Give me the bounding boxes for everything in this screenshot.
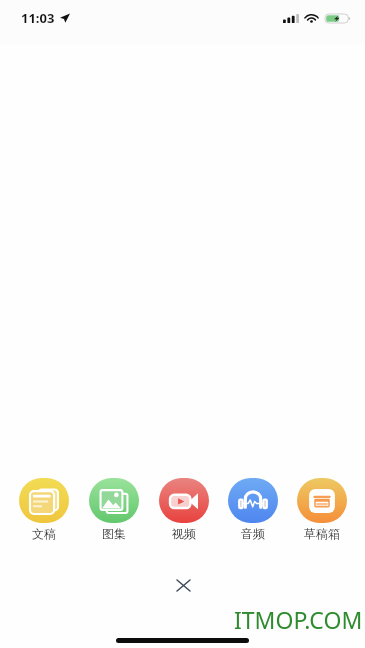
staticText: 11:03	[21, 9, 55, 27]
button[interactable]: 图集	[79, 476, 149, 543]
staticText: 草稿箱	[304, 526, 340, 541]
button[interactable]: 音频	[218, 476, 287, 543]
staticText: 视频	[172, 526, 196, 541]
staticText: 图集	[102, 526, 126, 541]
button[interactable]: 草稿箱	[287, 476, 356, 543]
staticText: 音频	[241, 526, 265, 541]
button[interactable]: 文稿	[9, 476, 79, 543]
button[interactable]: Close	[165, 567, 201, 603]
staticText: ITMOP.COM	[234, 604, 363, 635]
button[interactable]: 视频	[149, 476, 218, 543]
staticText: 文稿	[32, 526, 56, 541]
